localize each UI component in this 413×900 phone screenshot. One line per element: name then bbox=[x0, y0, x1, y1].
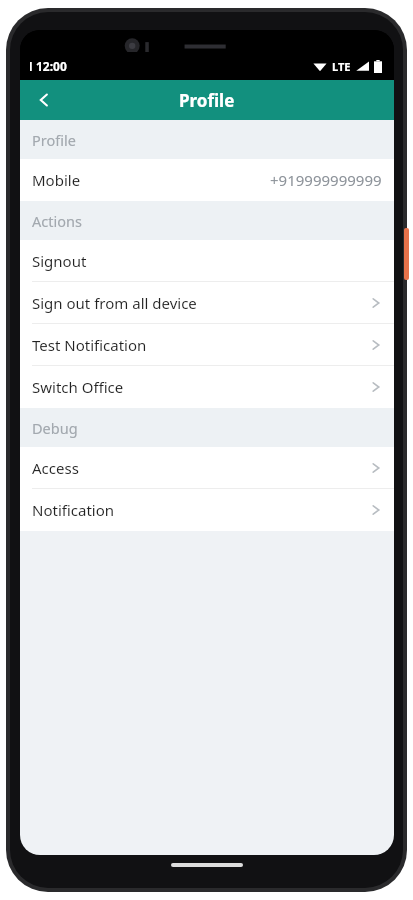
staticText: Profile bbox=[179, 89, 235, 112]
staticText: Signout bbox=[32, 251, 87, 271]
staticText: Notification bbox=[32, 500, 115, 520]
staticText: Switch Office bbox=[32, 377, 124, 397]
staticText: +919999999999 bbox=[270, 170, 382, 190]
button[interactable]: Signout bbox=[20, 240, 394, 282]
staticText: LTE bbox=[332, 59, 351, 74]
staticText: Test Notification bbox=[32, 335, 147, 355]
staticText: Sign out from all device bbox=[32, 293, 197, 313]
staticText: Access bbox=[32, 458, 79, 478]
button[interactable]: Access bbox=[20, 447, 394, 489]
staticText: Debug bbox=[32, 418, 78, 438]
button[interactable]: Notification bbox=[20, 489, 394, 531]
staticText: Profile bbox=[32, 130, 76, 150]
staticText: 12:00 bbox=[36, 58, 67, 74]
button[interactable]: Back bbox=[24, 80, 64, 120]
button[interactable]: Switch Office bbox=[20, 366, 394, 408]
button[interactable]: Sign out from all device bbox=[20, 282, 394, 324]
button[interactable]: Test Notification bbox=[20, 324, 394, 366]
staticText: Actions bbox=[32, 211, 82, 231]
staticText: Mobile bbox=[32, 170, 81, 190]
button[interactable]: Mobile bbox=[20, 159, 394, 201]
